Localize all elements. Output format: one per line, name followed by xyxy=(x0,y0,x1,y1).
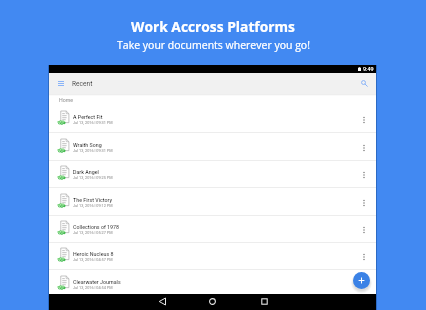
button[interactable]: Back xyxy=(154,293,170,309)
button[interactable]: More options xyxy=(359,247,369,267)
staticText: Jul 13, 2016 | 09:31 PM xyxy=(73,120,113,124)
button[interactable]: Recent apps xyxy=(256,293,272,309)
staticText: 9:49 xyxy=(363,66,374,72)
button[interactable]: Open navigation drawer xyxy=(54,73,67,94)
staticText: Collections of 1978 xyxy=(73,224,120,230)
button[interactable]: More options xyxy=(359,110,369,130)
staticText: Take your documents wherever you go! xyxy=(117,38,310,52)
staticText: Jul 13, 2016 | 05:27 PM xyxy=(73,230,113,234)
staticText: Recent xyxy=(72,80,93,88)
staticText: Jul 13, 2016 | 09:12 PM xyxy=(73,203,113,207)
staticText: Home xyxy=(59,97,73,103)
button[interactable]: More options xyxy=(359,275,369,295)
button[interactable]: More options xyxy=(359,193,369,213)
button[interactable] xyxy=(49,243,376,270)
button[interactable]: Create new document xyxy=(353,272,370,289)
staticText: The First Victory xyxy=(73,197,113,203)
staticText: Clearwater Journals xyxy=(73,279,121,285)
staticText: Dark Angel xyxy=(73,169,99,175)
button[interactable] xyxy=(49,134,376,161)
staticText: Jul 13, 2016 | 09:31 PM xyxy=(73,148,113,152)
button[interactable] xyxy=(49,106,376,133)
staticText: Wraith Song xyxy=(73,142,102,148)
button[interactable] xyxy=(49,161,376,188)
staticText: Jul 13, 2016 | 04:54 PM xyxy=(73,285,113,289)
staticText: Jul 13, 2016 | 04:57 PM xyxy=(73,257,113,261)
staticText: A Perfect Fit xyxy=(73,114,103,120)
button[interactable]: More options xyxy=(359,165,369,185)
button[interactable] xyxy=(49,216,376,243)
button[interactable]: Home xyxy=(204,293,220,309)
staticText: Jul 13, 2016 | 09:25 PM xyxy=(73,175,113,179)
button[interactable] xyxy=(49,271,376,298)
button[interactable]: Search xyxy=(358,77,371,90)
button[interactable]: More options xyxy=(359,138,369,158)
staticText: Work Accross Platforms xyxy=(131,17,295,36)
staticText: Heroic Nucleus 8 xyxy=(73,251,114,257)
button[interactable]: More options xyxy=(359,220,369,240)
button[interactable] xyxy=(49,189,376,216)
